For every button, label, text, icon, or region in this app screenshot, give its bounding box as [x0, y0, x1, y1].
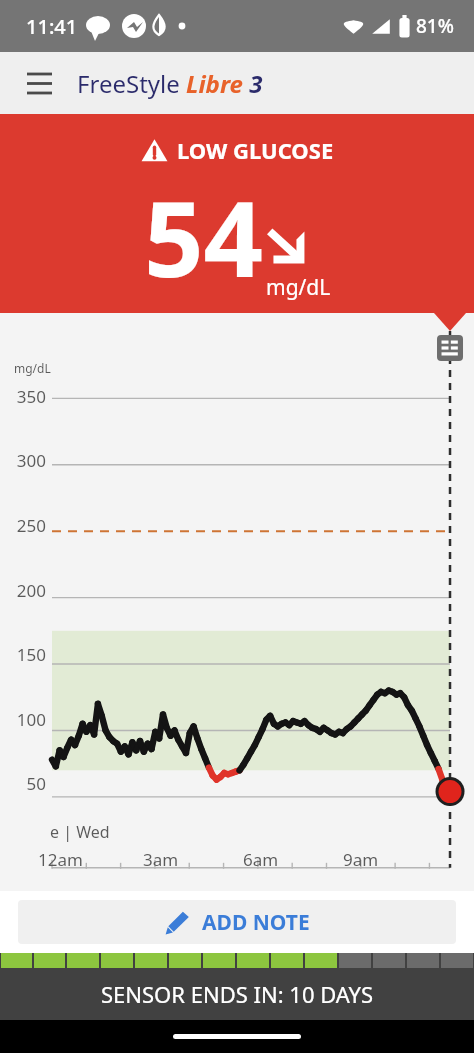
staticText: mg/dL — [266, 273, 331, 302]
staticText: 6am — [243, 848, 279, 871]
staticText: 100 — [0, 708, 46, 731]
staticText: 300 — [0, 449, 46, 472]
staticText: FreeStyle Libre 3 — [77, 67, 263, 100]
staticText: 81% — [416, 13, 454, 39]
staticText: 350 — [0, 385, 46, 408]
staticText: 250 — [0, 514, 46, 537]
staticText: 54 — [144, 166, 263, 308]
button[interactable]: ADD NOTE — [18, 900, 456, 944]
staticText: LOW GLUCOSE — [177, 135, 334, 165]
staticText: SENSOR ENDS IN: 10 DAYS — [101, 979, 374, 1009]
button[interactable]: Open navigation menu — [16, 60, 62, 106]
staticText: e | Wed — [50, 821, 110, 843]
staticText: 11:41 — [26, 13, 78, 40]
button[interactable]: SENSOR ENDS IN: 10 DAYS — [0, 968, 474, 1020]
staticText: 200 — [0, 579, 46, 602]
staticText: 3am — [143, 848, 179, 871]
staticText: 9am — [343, 848, 379, 871]
staticText: 150 — [0, 643, 46, 666]
staticText: 50 — [0, 772, 46, 795]
staticText: mg/dL — [14, 360, 51, 376]
staticText: ADD NOTE — [202, 908, 310, 937]
staticText: 12am — [38, 848, 83, 871]
